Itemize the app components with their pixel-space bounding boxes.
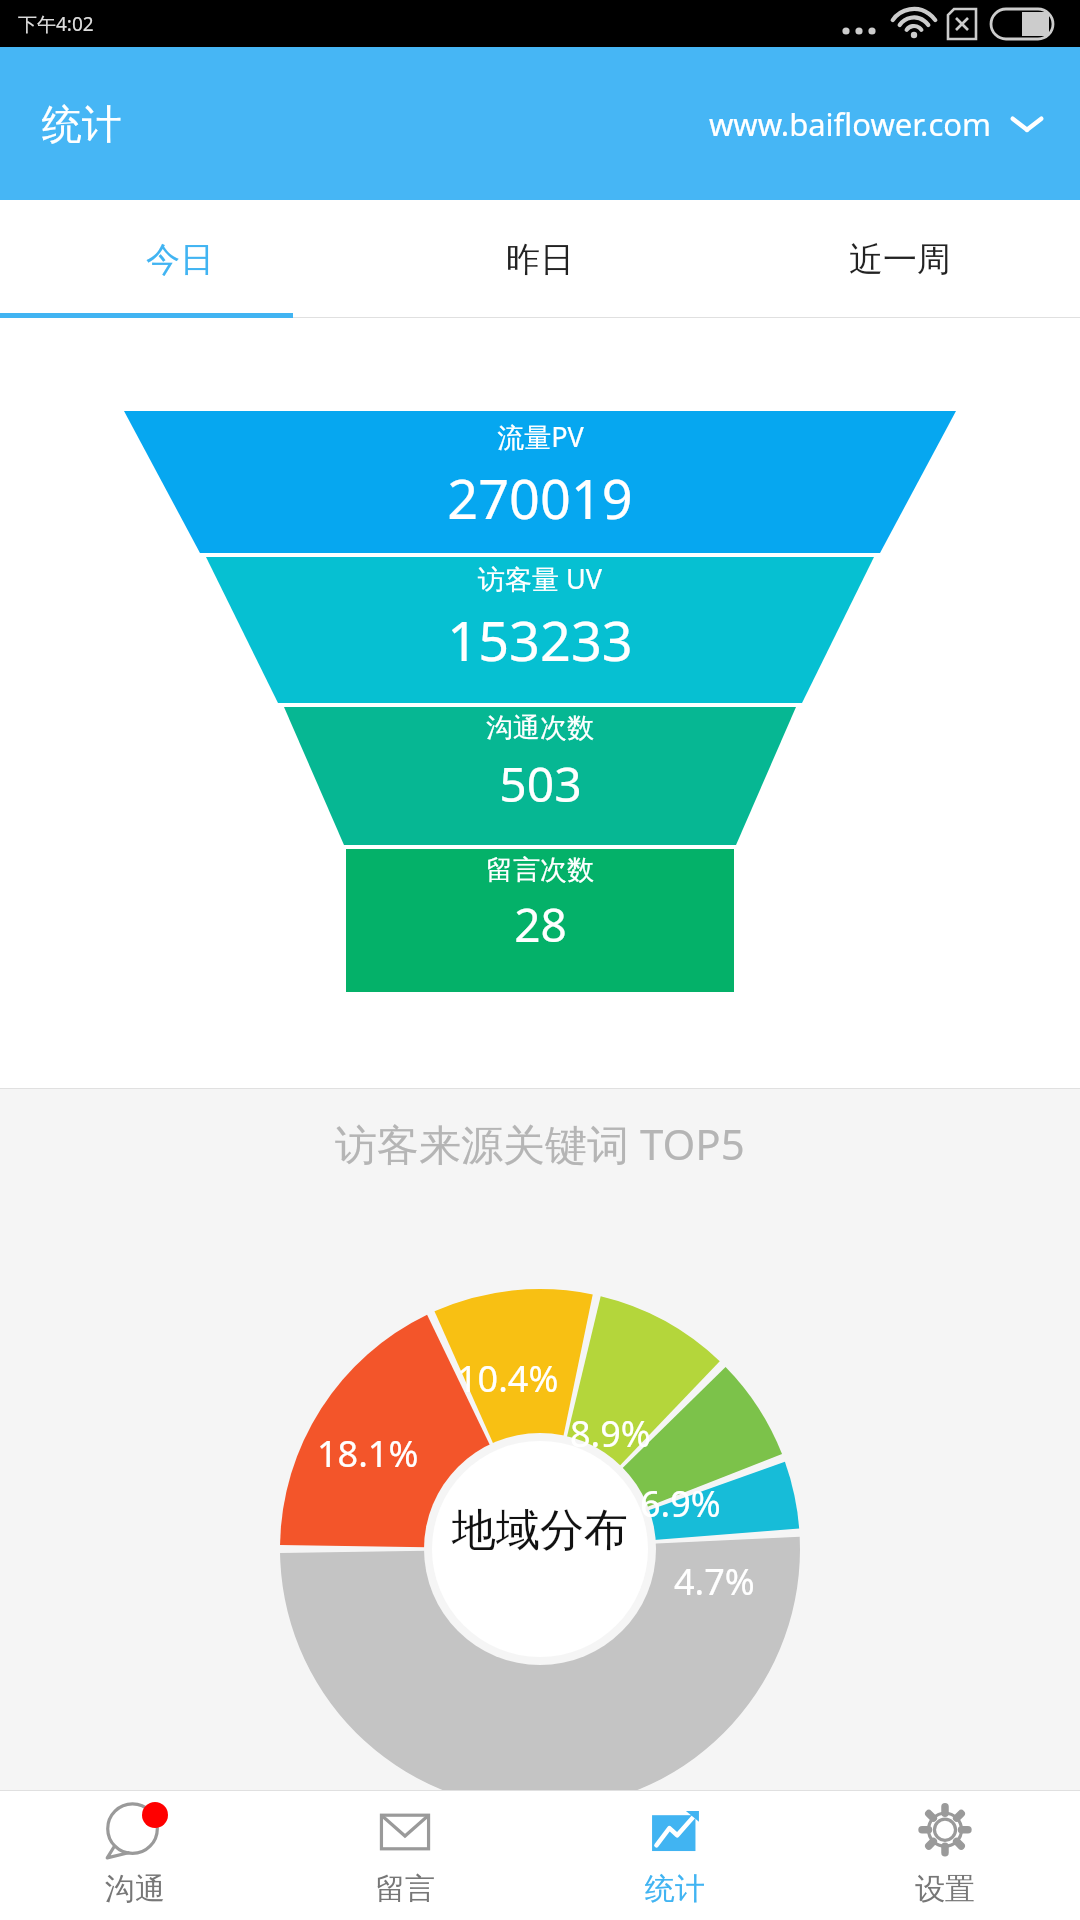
button[interactable]: 昨日 xyxy=(360,200,720,318)
button[interactable]: 近一周 xyxy=(720,200,1080,318)
staticText: 沟通次数 xyxy=(486,711,594,745)
button[interactable]: 沟通 xyxy=(0,1791,270,1920)
staticText: 今日 xyxy=(146,238,214,281)
staticText: 留言 xyxy=(375,1870,435,1908)
staticText: 153233 xyxy=(447,603,633,677)
staticText: 8.9% xyxy=(570,1409,651,1458)
staticText: 流量PV xyxy=(497,418,584,455)
staticText: 503 xyxy=(499,751,582,816)
staticText: 270019 xyxy=(447,461,633,535)
button[interactable]: 留言 xyxy=(270,1791,540,1920)
staticText: 沟通 xyxy=(105,1870,165,1908)
staticText: 设置 xyxy=(915,1870,975,1908)
staticText: 51% xyxy=(504,1784,576,1833)
staticText: 访客量 UV xyxy=(478,560,602,597)
staticText: 统计 xyxy=(645,1870,705,1908)
staticText: 18.1% xyxy=(317,1429,419,1478)
staticText: 访客来源关键词 TOP5 xyxy=(335,1115,745,1172)
button[interactable]: 设置 xyxy=(810,1791,1080,1920)
button[interactable]: www.baiflower.com xyxy=(703,95,1050,153)
staticText: 6.9% xyxy=(640,1479,721,1528)
staticText: 下午4:02 xyxy=(18,11,94,37)
staticText: www.baiflower.com xyxy=(709,103,992,145)
staticText: 昨日 xyxy=(506,238,574,281)
staticText: 28 xyxy=(514,893,567,956)
staticText: 近一周 xyxy=(849,238,951,281)
staticText: 留言次数 xyxy=(486,853,594,887)
button[interactable]: 统计 xyxy=(540,1791,810,1920)
staticText: 4.7% xyxy=(674,1557,755,1606)
staticText: 10.4% xyxy=(457,1354,559,1403)
staticText: 统计 xyxy=(42,99,122,149)
other: 展开 xyxy=(1010,112,1044,136)
staticText: 地域分布 xyxy=(452,1503,628,1558)
button[interactable]: 今日 xyxy=(0,200,360,318)
